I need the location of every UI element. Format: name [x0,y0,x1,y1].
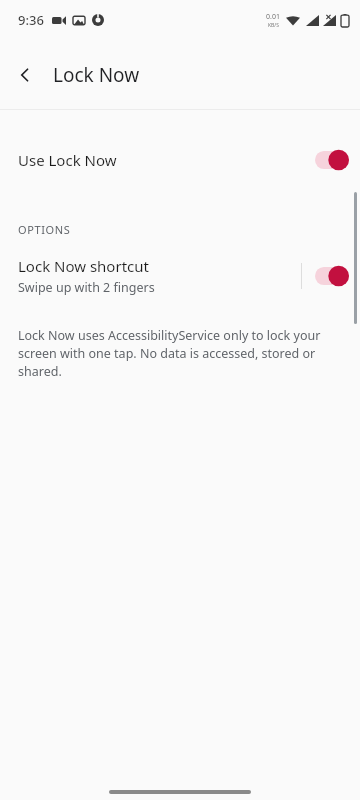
staticText: Lock Now shortcut [18,256,149,276]
staticText: Lock Now [53,62,140,88]
button[interactable]: Use Lock Now [0,136,360,184]
button[interactable]: Lock Now shortcut [0,251,360,301]
staticText: 0.01 [266,12,280,22]
staticText: Lock Now uses AccessibilityService only … [18,327,342,380]
staticText: OPTIONS [18,222,71,237]
button[interactable]: Toggle [315,265,349,287]
button[interactable]: Back [9,59,41,91]
button[interactable]: Toggle [315,149,349,171]
staticText: Swipe up with 2 fingers [18,279,155,296]
staticText: KB/S [268,22,279,29]
staticText: Use Lock Now [18,150,117,170]
staticText: 9:36 [18,11,44,29]
